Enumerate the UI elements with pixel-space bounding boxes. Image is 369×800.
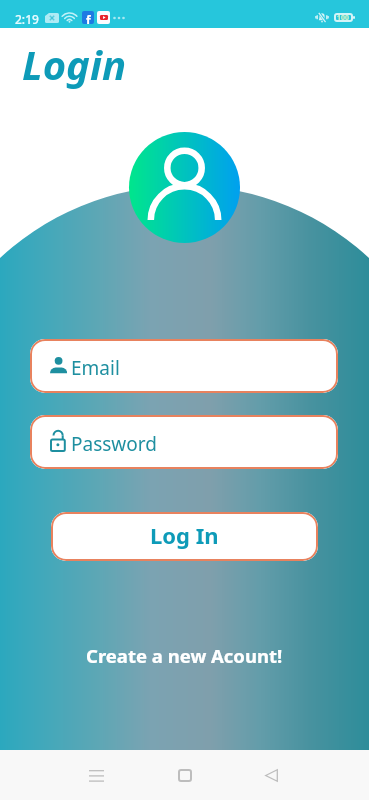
staticText: Create a new Acount!	[86, 643, 283, 668]
button[interactable]: Recent apps	[69, 750, 124, 800]
button[interactable]: Home	[157, 750, 212, 800]
button[interactable]: Email	[30, 339, 338, 393]
button[interactable]: Password	[30, 415, 338, 469]
staticText: 2:19	[15, 11, 39, 27]
button[interactable]: Create a new Acount!	[0, 643, 369, 668]
button[interactable]: Log In	[51, 512, 318, 561]
staticText: Log In	[150, 520, 219, 550]
button[interactable]: Back	[244, 750, 299, 800]
staticText: 100	[337, 13, 350, 22]
staticText: Login	[22, 37, 127, 91]
staticText: f	[86, 12, 91, 24]
staticText: Email	[71, 355, 120, 381]
staticText: Password	[71, 431, 157, 457]
